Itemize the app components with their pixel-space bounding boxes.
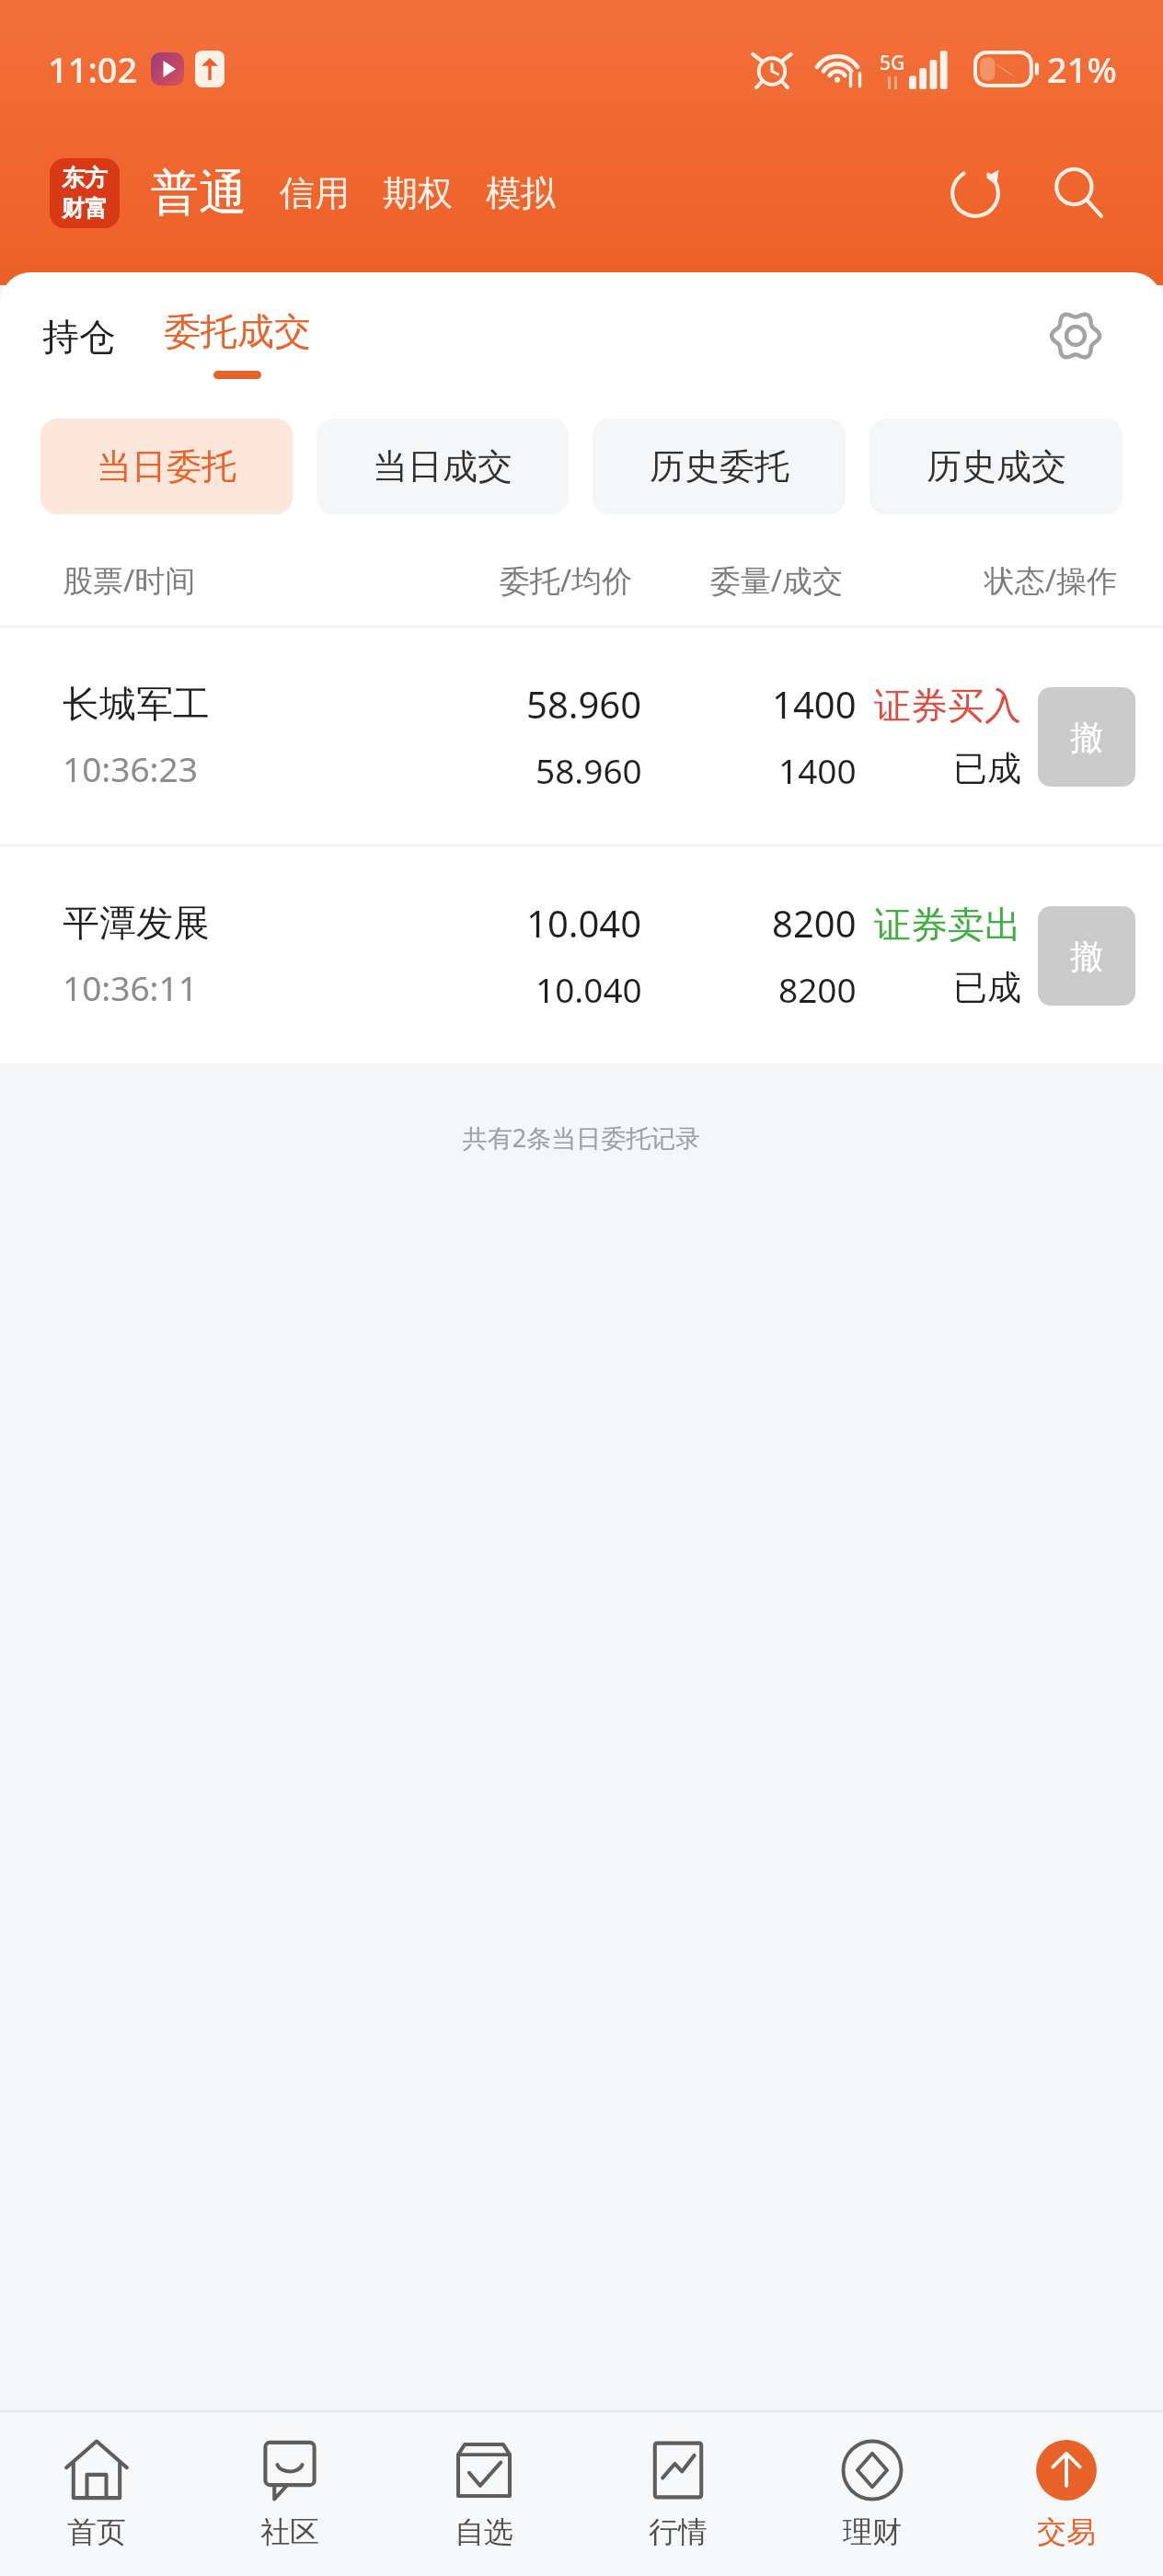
staticText: 长城军工: [63, 681, 210, 727]
staticText: 期权: [383, 171, 453, 215]
staticText: 财富: [62, 194, 108, 223]
button[interactable]: 模拟: [486, 171, 556, 215]
staticText: 10.040: [526, 898, 642, 948]
button[interactable]: 信用: [280, 171, 350, 215]
staticText: 21%: [1047, 45, 1117, 93]
button[interactable]: 持仓: [31, 299, 127, 374]
button[interactable]: Search: [1034, 149, 1123, 237]
staticText: 持仓: [42, 314, 116, 360]
staticText: 委托/均价: [379, 559, 632, 601]
staticText: 撤: [1070, 936, 1103, 977]
staticText: 已成: [953, 966, 1021, 1009]
staticText: 状态/操作: [843, 559, 1117, 601]
staticText: 证券卖出: [874, 902, 1021, 948]
staticText: 当日成交: [373, 444, 512, 489]
staticText: 自选: [455, 2513, 513, 2550]
staticText: 首页: [67, 2513, 126, 2550]
staticText: 委托成交: [164, 308, 311, 354]
button[interactable]: 期权: [383, 171, 453, 215]
staticText: 股票/时间: [63, 559, 379, 601]
staticText: 平潭发展: [63, 900, 210, 946]
staticText: 8200: [772, 898, 857, 948]
button[interactable]: 委托成交: [153, 293, 322, 379]
staticText: 行情: [649, 2513, 708, 2550]
button[interactable]: 首页: [0, 2412, 193, 2576]
staticText: 撤: [1070, 717, 1103, 758]
staticText: 信用: [280, 171, 350, 215]
button[interactable]: 历史委托: [593, 419, 846, 514]
button[interactable]: Refresh: [931, 149, 1019, 237]
staticText: 历史成交: [927, 444, 1066, 489]
button[interactable]: 平潭发展: [0, 846, 1163, 1064]
button[interactable]: 撤: [1038, 906, 1135, 1006]
button[interactable]: 理财: [775, 2412, 969, 2576]
staticText: 1400: [772, 679, 857, 729]
staticText: 东方: [62, 164, 108, 192]
button[interactable]: 交易: [969, 2412, 1163, 2576]
staticText: 10:36:11: [63, 964, 198, 1010]
staticText: 交易: [1037, 2513, 1096, 2550]
staticText: 58.960: [535, 747, 642, 793]
button[interactable]: 行情: [581, 2412, 775, 2576]
staticText: 社区: [260, 2513, 319, 2550]
staticText: 证券买入: [874, 683, 1021, 729]
staticText: 11:02: [48, 45, 138, 93]
staticText: 10.040: [535, 966, 642, 1012]
button[interactable]: 当日委托: [40, 419, 293, 514]
staticText: 58.960: [526, 679, 642, 729]
staticText: 1400: [778, 747, 857, 793]
button[interactable]: 社区: [193, 2412, 386, 2576]
staticText: 已成: [953, 747, 1021, 790]
button[interactable]: 长城军工: [0, 627, 1163, 845]
button[interactable]: Settings: [1034, 294, 1117, 377]
staticText: 模拟: [486, 171, 556, 215]
button[interactable]: 历史成交: [869, 419, 1123, 514]
staticText: 8200: [778, 966, 857, 1012]
staticText: 理财: [843, 2513, 902, 2550]
button[interactable]: 普通: [151, 163, 247, 224]
staticText: 5G: [880, 50, 905, 76]
staticText: 共有2条当日委托记录: [0, 1121, 1163, 1155]
button[interactable]: 撤: [1038, 687, 1135, 787]
button[interactable]: 当日成交: [317, 419, 569, 514]
button[interactable]: 自选: [386, 2412, 581, 2576]
button[interactable]: 东方: [50, 158, 120, 228]
staticText: 普通: [151, 163, 247, 224]
staticText: 历史委托: [650, 444, 789, 489]
staticText: 委量/成交: [632, 559, 843, 601]
staticText: 当日委托: [97, 444, 236, 489]
staticText: 10:36:23: [63, 745, 198, 791]
